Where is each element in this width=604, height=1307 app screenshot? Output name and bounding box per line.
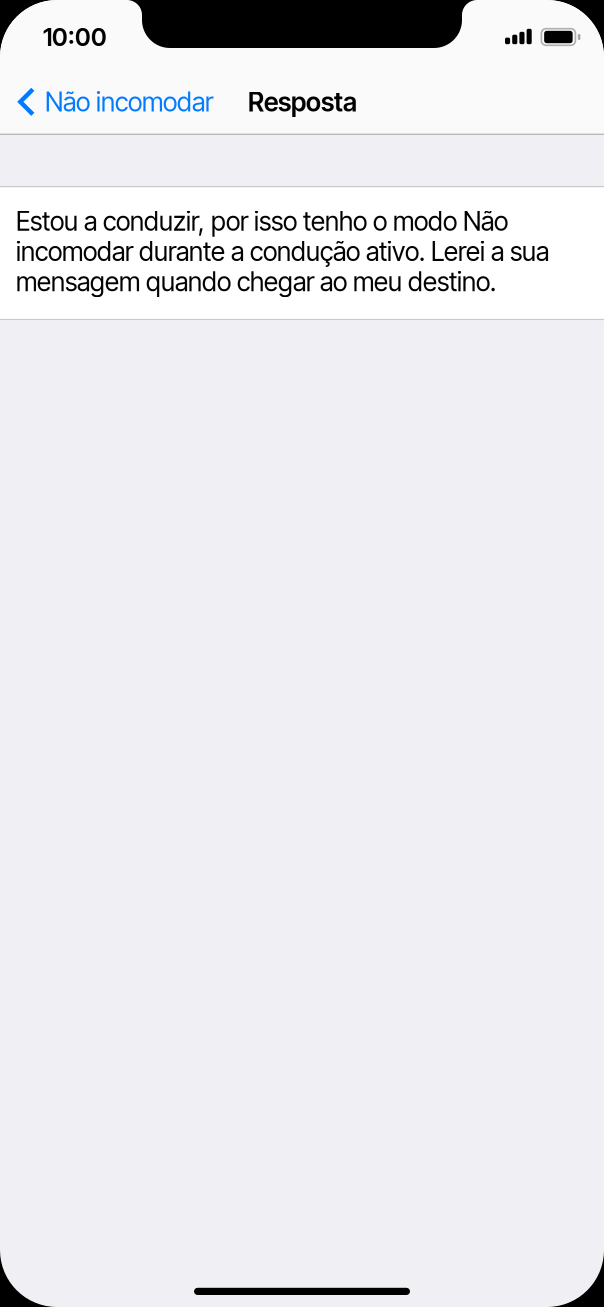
staticText: Resposta [248,86,357,118]
staticText: Estou a conduzir, por isso tenho o modo … [16,206,549,297]
staticText: 10:00 [43,22,107,52]
staticText: Não incomodar [45,86,213,118]
button[interactable]: Não incomodar [0,74,248,135]
button[interactable]: Estou a conduzir, por isso tenho o modo … [0,186,604,320]
